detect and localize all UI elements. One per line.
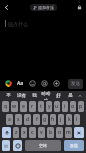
button[interactable]: 是 (64, 91, 76, 100)
staticText: 哈哈哈 (40, 91, 52, 100)
staticText: w (12, 103, 17, 110)
staticText: i (64, 103, 66, 110)
staticText: p (79, 103, 83, 110)
staticText: m (66, 129, 71, 136)
staticText: q (4, 103, 8, 110)
button[interactable]: z (13, 127, 19, 138)
button[interactable]: d (24, 114, 31, 125)
staticText: a (8, 116, 11, 123)
staticText: e (22, 103, 25, 110)
staticText: v (40, 129, 43, 136)
staticText: j (60, 116, 62, 123)
button[interactable]: n (56, 127, 63, 138)
staticText: s (17, 116, 20, 123)
button[interactable]: Emoji (27, 78, 38, 89)
button[interactable]: f (33, 114, 40, 125)
button[interactable]: 好 (52, 91, 64, 100)
button[interactable]: w (11, 101, 18, 112)
button[interactable]: Privacy (73, 1, 86, 14)
staticText: 不 (6, 93, 11, 99)
staticText: z (15, 129, 18, 136)
button[interactable]: Sticker (51, 78, 62, 89)
button[interactable]: i (62, 101, 68, 112)
button[interactable]: 我 (28, 91, 40, 100)
button[interactable]: 不 (2, 91, 15, 100)
button[interactable]: u (54, 101, 60, 112)
staticText: b (49, 129, 53, 136)
staticText: h (51, 116, 55, 123)
button[interactable]: r (29, 101, 36, 112)
button[interactable]: Gallery (3, 78, 14, 89)
button[interactable]: p (78, 101, 84, 112)
staticText: k (68, 116, 71, 123)
staticText: r (31, 103, 34, 110)
button[interactable]: h (50, 114, 56, 125)
staticText: y (48, 103, 51, 110)
button[interactable]: s (15, 114, 22, 125)
button[interactable]: a (6, 114, 13, 125)
button[interactable]: Shift (2, 127, 11, 138)
button[interactable]: g (42, 114, 48, 125)
button[interactable]: b (47, 127, 54, 138)
button[interactable]: 说点什么 (0, 14, 86, 76)
staticText: 没有 (17, 93, 26, 99)
staticText: 空格 (39, 143, 47, 148)
staticText: x (23, 129, 26, 136)
button[interactable]: Symbols (2, 140, 10, 151)
button[interactable]: More suggestions (76, 91, 84, 100)
button[interactable]: v (38, 127, 45, 138)
button[interactable]: 空格 (25, 140, 61, 151)
staticText: u (55, 103, 59, 110)
button[interactable]: Mention (39, 78, 50, 89)
button[interactable]: o (70, 101, 76, 112)
button[interactable]: 哈哈哈 (40, 91, 52, 100)
button[interactable]: y (46, 101, 52, 112)
staticText: 发送 (70, 143, 78, 148)
staticText: d (26, 116, 30, 123)
button[interactable]: l (74, 114, 80, 125)
staticText: f (36, 116, 38, 123)
staticText: t (40, 103, 42, 110)
staticText: 说点什么 (8, 21, 28, 27)
button[interactable]: q (2, 101, 9, 112)
button[interactable]: k (66, 114, 72, 125)
button[interactable]: t (38, 101, 44, 112)
staticText: n (58, 129, 62, 136)
staticText: c (31, 129, 34, 136)
staticText: 添加音乐 (38, 5, 54, 10)
button[interactable]: x (21, 127, 27, 138)
button[interactable]: Back (0, 1, 13, 14)
button[interactable]: 发送 (68, 79, 83, 89)
button[interactable]: c (29, 127, 36, 138)
button[interactable]: e (20, 101, 27, 112)
button[interactable]: m (65, 127, 72, 138)
button[interactable]: j (58, 114, 64, 125)
button[interactable]: Aa (15, 78, 26, 89)
staticText: o (71, 103, 75, 110)
button[interactable]: Emoji keyboard (13, 140, 22, 151)
staticText: 好 (56, 93, 61, 99)
button[interactable]: 没有 (15, 91, 28, 100)
staticText: 是 (68, 93, 73, 99)
staticText: 我 (32, 93, 37, 99)
staticText: Aa (17, 80, 24, 87)
staticText: 发送 (71, 81, 80, 87)
button[interactable]: 发送 (64, 140, 84, 151)
staticText: l (76, 116, 78, 123)
button[interactable]: Backspace (74, 127, 84, 138)
button[interactable]: 添加音乐 (30, 4, 57, 11)
staticText: g (43, 116, 47, 123)
